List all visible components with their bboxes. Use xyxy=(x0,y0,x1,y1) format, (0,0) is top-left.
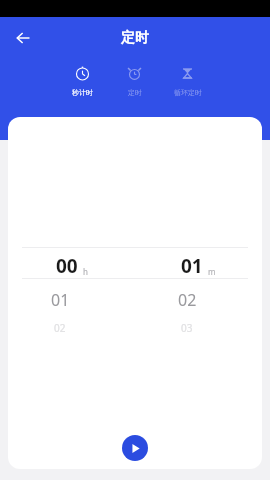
staticText: 循环定时 xyxy=(174,88,202,97)
button[interactable]: 秒计时 xyxy=(56,64,108,97)
staticText: 01 xyxy=(51,289,70,311)
button[interactable]: 循环定时 xyxy=(161,64,214,97)
staticText: 03 xyxy=(181,321,193,335)
button[interactable]: Back xyxy=(6,21,40,55)
button[interactable]: 01 xyxy=(135,247,262,273)
staticText: 02 xyxy=(54,321,66,335)
staticText: 定时 xyxy=(128,88,142,97)
staticText: 02 xyxy=(178,289,197,311)
staticText: 秒计时 xyxy=(72,88,93,97)
button[interactable]: 00 xyxy=(8,247,135,273)
staticText: m xyxy=(208,266,216,277)
button[interactable]: 定时 xyxy=(108,64,161,97)
staticText: 00 xyxy=(56,253,78,279)
staticText: 定时 xyxy=(121,29,149,47)
button[interactable]: Start timer xyxy=(122,435,148,461)
staticText: 01 xyxy=(181,253,203,279)
staticText: h xyxy=(83,266,88,277)
